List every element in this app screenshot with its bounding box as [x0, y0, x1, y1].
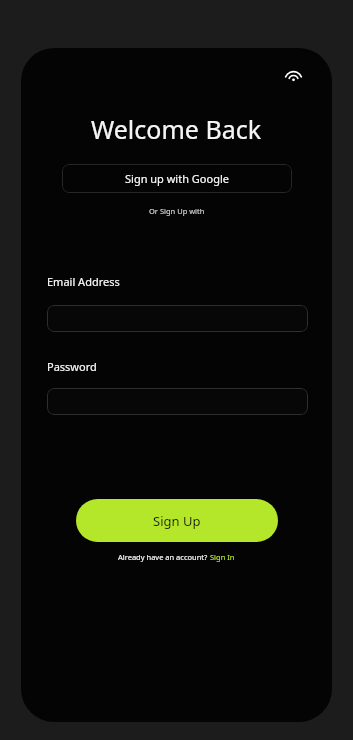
button[interactable]: Sign Up: [76, 499, 278, 542]
staticText: Sign Up: [153, 512, 201, 530]
button[interactable]: Wi-Fi: [278, 59, 308, 89]
button[interactable]: Sign up with Google: [62, 164, 292, 193]
button[interactable]: Email Address field: [47, 305, 308, 332]
button[interactable]: Sign In: [210, 552, 235, 562]
staticText: Password: [47, 359, 97, 374]
staticText: Sign In: [210, 552, 235, 562]
button[interactable]: Password field: [47, 388, 308, 415]
staticText: Sign up with Google: [125, 171, 229, 186]
staticText: Welcome Back: [91, 112, 262, 146]
staticText: Already have an account?: [118, 552, 210, 562]
staticText: Email Address: [47, 274, 120, 289]
staticText: Or Sign Up with: [149, 206, 205, 216]
